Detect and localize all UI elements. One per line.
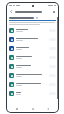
button[interactable]: Open: [7, 89, 58, 98]
button[interactable]: Open: [7, 71, 58, 80]
button[interactable]: Open: [7, 80, 58, 89]
button[interactable]: Recents: [11, 106, 23, 112]
button[interactable]: Back: [9, 9, 14, 14]
button[interactable]: [9, 15, 56, 20]
button[interactable]: Open: [7, 44, 58, 53]
button[interactable]: Open: [7, 35, 58, 44]
button[interactable]: Open: [7, 62, 58, 71]
button[interactable]: Open: [7, 26, 58, 35]
button[interactable]: Open: [7, 53, 58, 62]
button[interactable]: Home: [27, 106, 39, 112]
button[interactable]: Back: [42, 106, 54, 112]
button[interactable]: Search: [52, 10, 56, 14]
